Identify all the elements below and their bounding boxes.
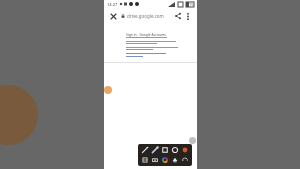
button[interactable]: Highlighter — [151, 146, 159, 154]
button[interactable]: Expand tools — [189, 137, 196, 144]
button[interactable]: Share — [173, 11, 183, 21]
button[interactable]: More options — [183, 11, 193, 21]
staticText: drive.google.com — [127, 13, 164, 19]
button[interactable]: Rectangle — [161, 146, 169, 154]
button[interactable]: Crop — [141, 156, 149, 164]
button[interactable]: Eraser — [181, 146, 189, 154]
staticText: Sign in - Google Accounts — [126, 32, 166, 36]
button[interactable]: Stamp — [151, 156, 159, 164]
button[interactable]: Undo — [181, 156, 189, 164]
button[interactable]: Pen — [141, 146, 149, 154]
button[interactable]: Ellipse — [171, 146, 179, 154]
staticText: 14:27 — [107, 2, 118, 7]
button[interactable]: Close — [108, 11, 118, 21]
button[interactable]: Fill — [171, 156, 179, 164]
staticText: 15 — [189, 2, 194, 7]
button[interactable]: Colour — [161, 156, 169, 164]
